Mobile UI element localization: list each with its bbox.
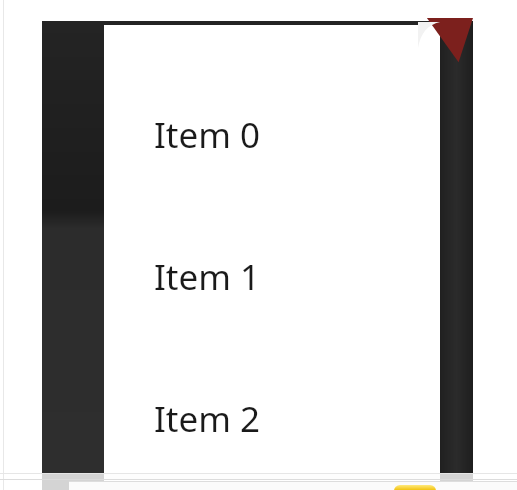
button[interactable]: Item 0	[104, 91, 440, 233]
staticText: Item 2	[154, 395, 261, 443]
button[interactable]: Item 1	[104, 233, 440, 375]
staticText: Item 0	[154, 111, 261, 159]
button[interactable]: Item 2	[104, 375, 440, 490]
button[interactable]: Yellow indicator	[394, 485, 436, 490]
staticText: Item 1	[154, 253, 261, 301]
